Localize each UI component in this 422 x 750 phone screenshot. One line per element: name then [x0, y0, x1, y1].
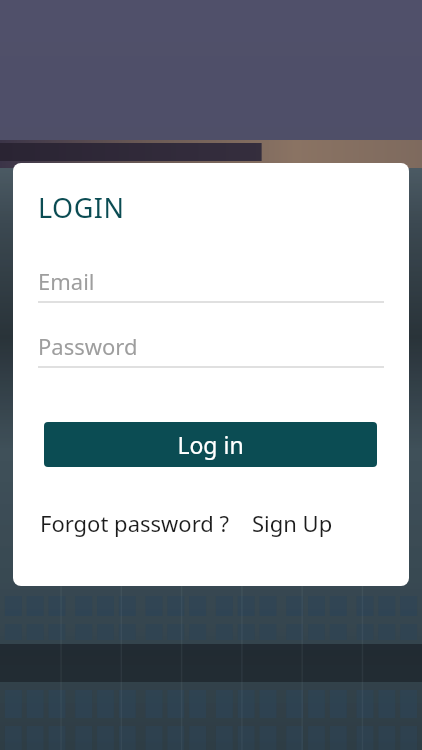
button[interactable]: Log in	[44, 422, 377, 467]
staticText: Email	[38, 266, 95, 296]
button[interactable]: Email	[38, 263, 384, 299]
button[interactable]: Password	[38, 328, 384, 364]
button[interactable]: Sign Up	[252, 506, 333, 540]
staticText: Log in	[177, 429, 244, 460]
staticText: Forgot password ?	[40, 508, 230, 538]
staticText: LOGIN	[38, 189, 125, 226]
staticText: Sign Up	[252, 508, 333, 538]
staticText: Password	[38, 331, 138, 361]
button[interactable]: Forgot password ?	[40, 506, 230, 540]
